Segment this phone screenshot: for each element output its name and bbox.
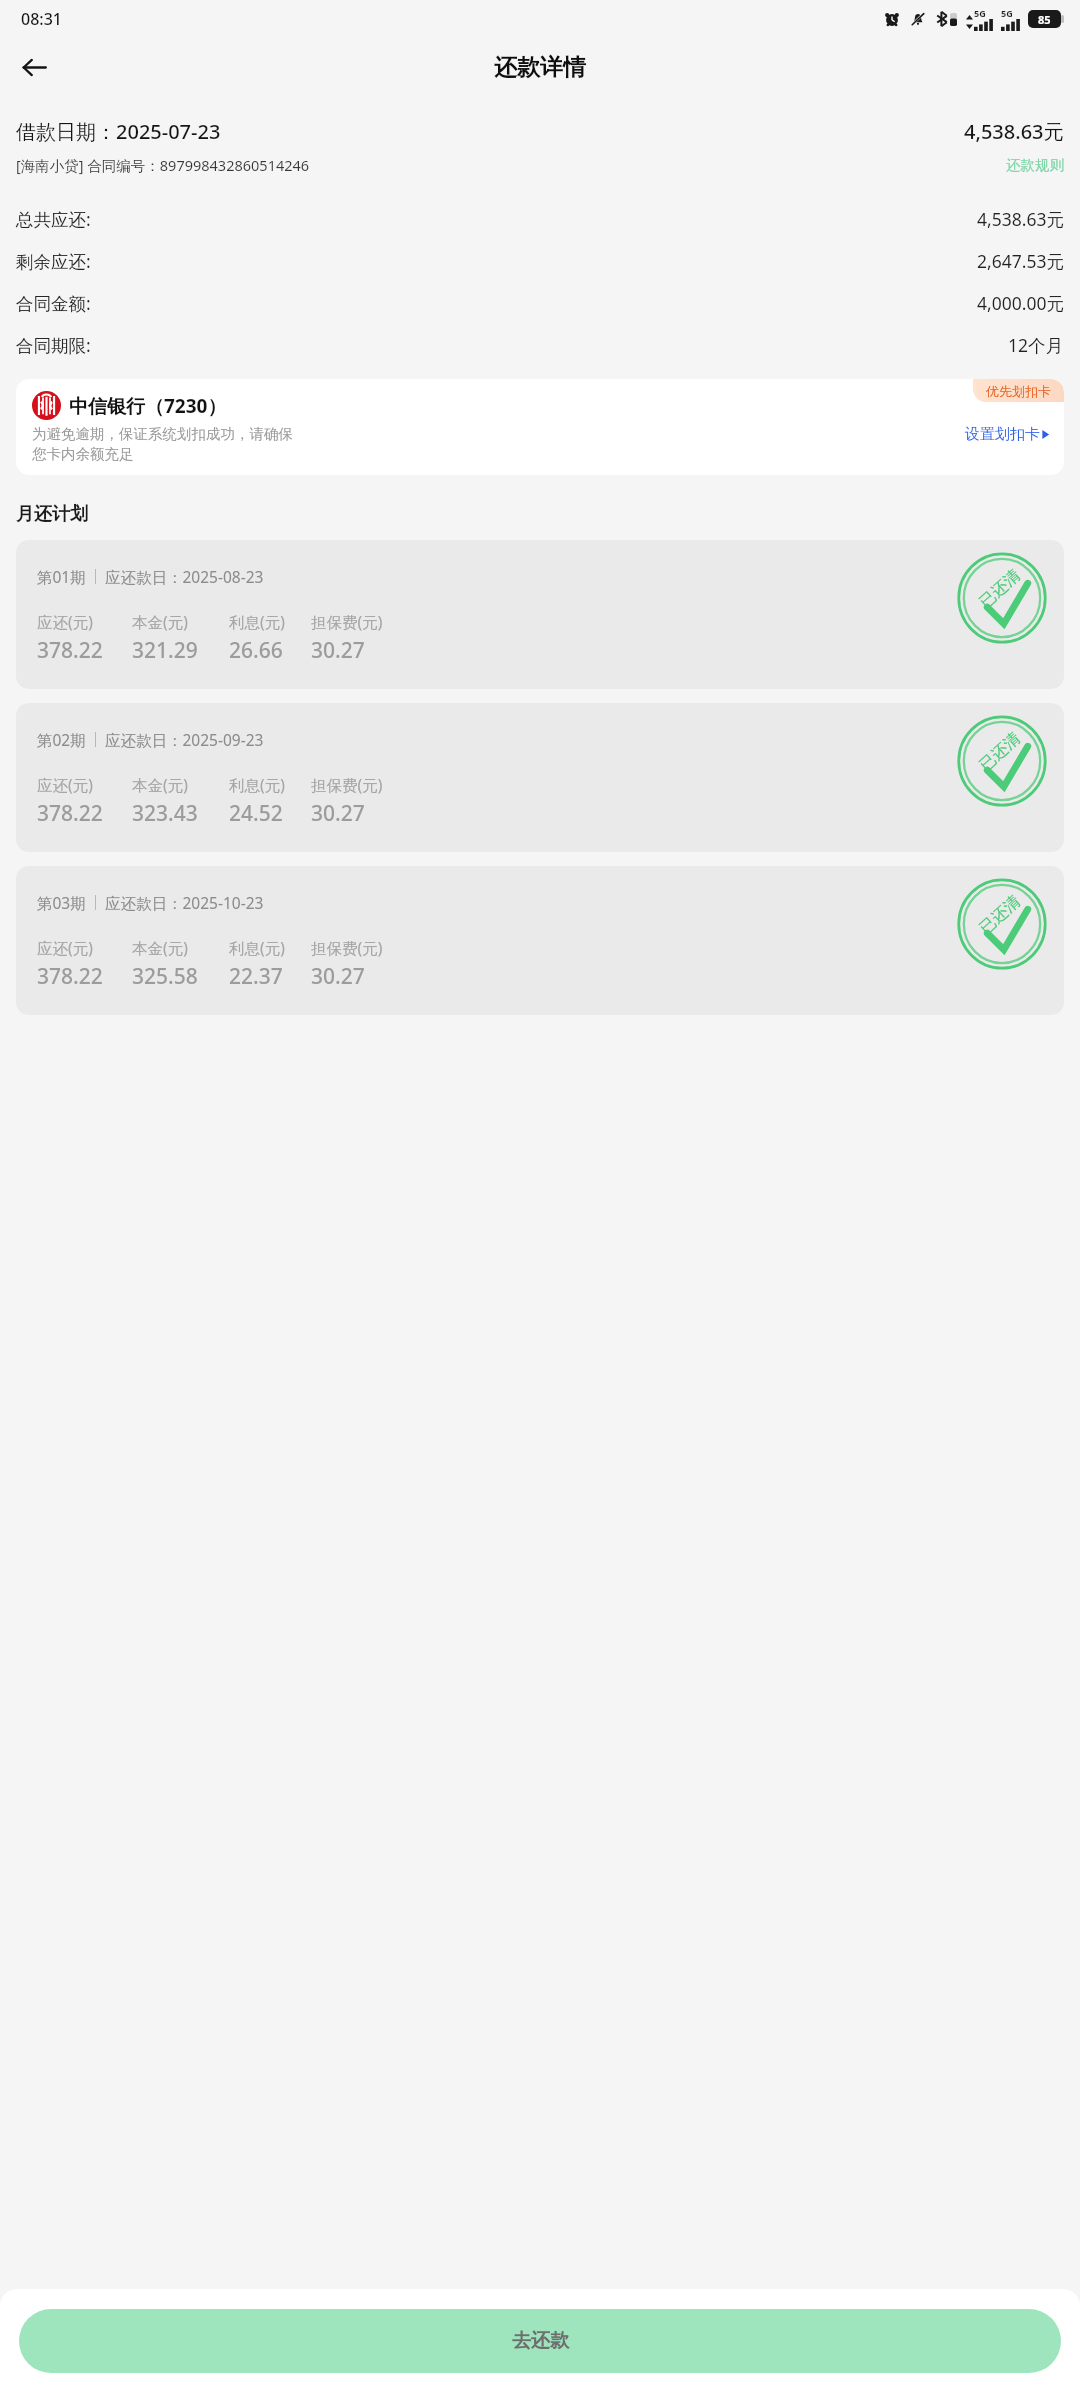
- staticText: 5G: [974, 7, 986, 19]
- staticText: 设置划扣卡: [965, 425, 1040, 444]
- staticText: 优先划扣卡: [986, 383, 1051, 399]
- staticText: 利息(元): [229, 774, 285, 795]
- staticText: [海南小贷] 合同编号：897998432860514246: [16, 155, 310, 175]
- staticText: 担保费(元): [311, 611, 383, 632]
- staticText: 应还款日：2025-10-23: [105, 892, 264, 913]
- staticText: 应还(元): [37, 774, 93, 795]
- button[interactable]: 已还清: [16, 703, 1064, 852]
- staticText: 担保费(元): [311, 937, 383, 958]
- button[interactable]: 已还清: [16, 540, 1064, 689]
- staticText: 已还清: [975, 891, 1025, 938]
- button[interactable]: 返回: [8, 41, 60, 93]
- staticText: 30.27: [311, 636, 365, 665]
- staticText: 378.22: [37, 636, 103, 665]
- staticText: 30.27: [311, 962, 365, 991]
- staticText: 借款日期：2025-07-23: [16, 118, 221, 145]
- staticText: 总共应还:: [16, 207, 91, 231]
- staticText: 还款规则: [1006, 156, 1064, 174]
- button[interactable]: 还款规则: [1006, 156, 1064, 174]
- staticText: 4,000.00元: [977, 291, 1064, 315]
- staticText: 378.22: [37, 799, 103, 828]
- button[interactable]: 设置划扣卡: [965, 425, 1050, 444]
- staticText: 应还款日：2025-09-23: [105, 729, 264, 750]
- staticText: 已还清: [975, 728, 1025, 775]
- staticText: 2,647.53元: [977, 249, 1064, 273]
- staticText: 5G: [1001, 7, 1013, 19]
- button[interactable]: 优先划扣卡: [16, 379, 1064, 475]
- staticText: 85: [1038, 12, 1051, 27]
- staticText: 26.66: [229, 636, 283, 665]
- staticText: 24.52: [229, 799, 283, 828]
- staticText: 08:31: [21, 8, 62, 30]
- staticText: 第03期: [37, 892, 86, 913]
- staticText: 本金(元): [132, 774, 188, 795]
- staticText: 还款详情: [494, 53, 586, 82]
- staticText: 利息(元): [229, 611, 285, 632]
- staticText: 第01期: [37, 566, 86, 587]
- staticText: 378.22: [37, 962, 103, 991]
- staticText: 本金(元): [132, 937, 188, 958]
- staticText: 去还款: [512, 2329, 569, 2353]
- staticText: 应还(元): [37, 937, 93, 958]
- staticText: 30.27: [311, 799, 365, 828]
- staticText: 4,538.63元: [964, 118, 1064, 145]
- staticText: 利息(元): [229, 937, 285, 958]
- staticText: 合同期限:: [16, 333, 91, 357]
- staticText: 剩余应还:: [16, 249, 91, 273]
- staticText: 321.29: [132, 636, 198, 665]
- staticText: 月还计划: [16, 503, 88, 526]
- button[interactable]: 已还清: [16, 866, 1064, 1015]
- staticText: 中信银行（7230）: [69, 393, 227, 419]
- staticText: 第02期: [37, 729, 86, 750]
- staticText: 应还(元): [37, 611, 93, 632]
- staticText: 本金(元): [132, 611, 188, 632]
- staticText: 323.43: [132, 799, 198, 828]
- staticText: 325.58: [132, 962, 198, 991]
- staticText: 22.37: [229, 962, 283, 991]
- button[interactable]: 去还款: [19, 2309, 1061, 2373]
- staticText: 12个月: [1008, 333, 1064, 357]
- staticText: 担保费(元): [311, 774, 383, 795]
- staticText: 合同金额:: [16, 291, 91, 315]
- staticText: 应还款日：2025-08-23: [105, 566, 264, 587]
- staticText: 已还清: [975, 565, 1025, 612]
- staticText: 4,538.63元: [977, 207, 1064, 231]
- staticText: 为避免逾期，保证系统划扣成功，请确保您卡内余额充足: [32, 425, 300, 463]
